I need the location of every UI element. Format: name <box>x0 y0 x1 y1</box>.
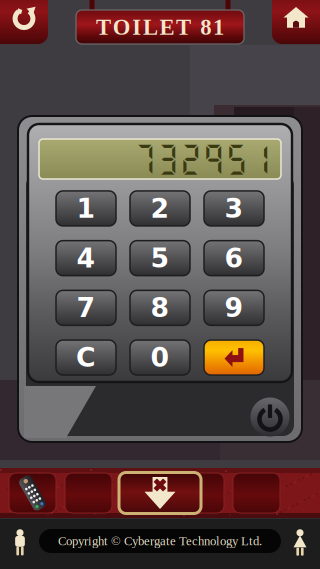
button[interactable]: 7 <box>56 290 116 325</box>
staticText: 0 <box>150 342 169 373</box>
staticText: 4 <box>76 243 95 274</box>
button[interactable]: 2 <box>130 191 190 226</box>
button[interactable]: Home <box>272 0 320 44</box>
staticText: TOILET 81 <box>96 14 224 39</box>
button[interactable]: 1 <box>56 191 116 226</box>
button[interactable]: 9 <box>204 290 264 325</box>
button[interactable]: Item slot 5 <box>233 473 280 513</box>
button[interactable]: 5 <box>130 241 190 276</box>
button[interactable]: Item slot 3 <box>121 473 168 513</box>
button[interactable]: Close <box>119 472 201 513</box>
button[interactable]: 6 <box>204 241 264 276</box>
staticText: 8 <box>150 292 169 323</box>
staticText: 732951 <box>133 140 271 178</box>
button[interactable]: Enter <box>204 340 264 375</box>
button[interactable]: Item slot 4 <box>177 473 224 513</box>
button[interactable]: 8 <box>130 290 190 325</box>
button[interactable]: Restart <box>0 0 48 44</box>
staticText: Copyright © Cybergate Technology Ltd. <box>58 534 262 548</box>
button[interactable]: C <box>56 340 116 375</box>
button[interactable]: 4 <box>56 241 116 276</box>
button[interactable]: Item slot 2 <box>65 473 112 513</box>
staticText: 2 <box>150 193 169 224</box>
button[interactable]: 0 <box>130 340 190 375</box>
staticText: 5 <box>150 243 169 274</box>
staticText: C <box>76 342 96 373</box>
staticText: 1 <box>76 193 95 224</box>
button[interactable]: Item slot 1 <box>9 473 56 513</box>
staticText: 7 <box>76 292 95 323</box>
staticText: 3 <box>224 193 243 224</box>
button[interactable]: Power <box>250 397 289 436</box>
staticText: 9 <box>224 292 243 323</box>
button[interactable]: 3 <box>204 191 264 226</box>
staticText: 6 <box>224 243 243 274</box>
